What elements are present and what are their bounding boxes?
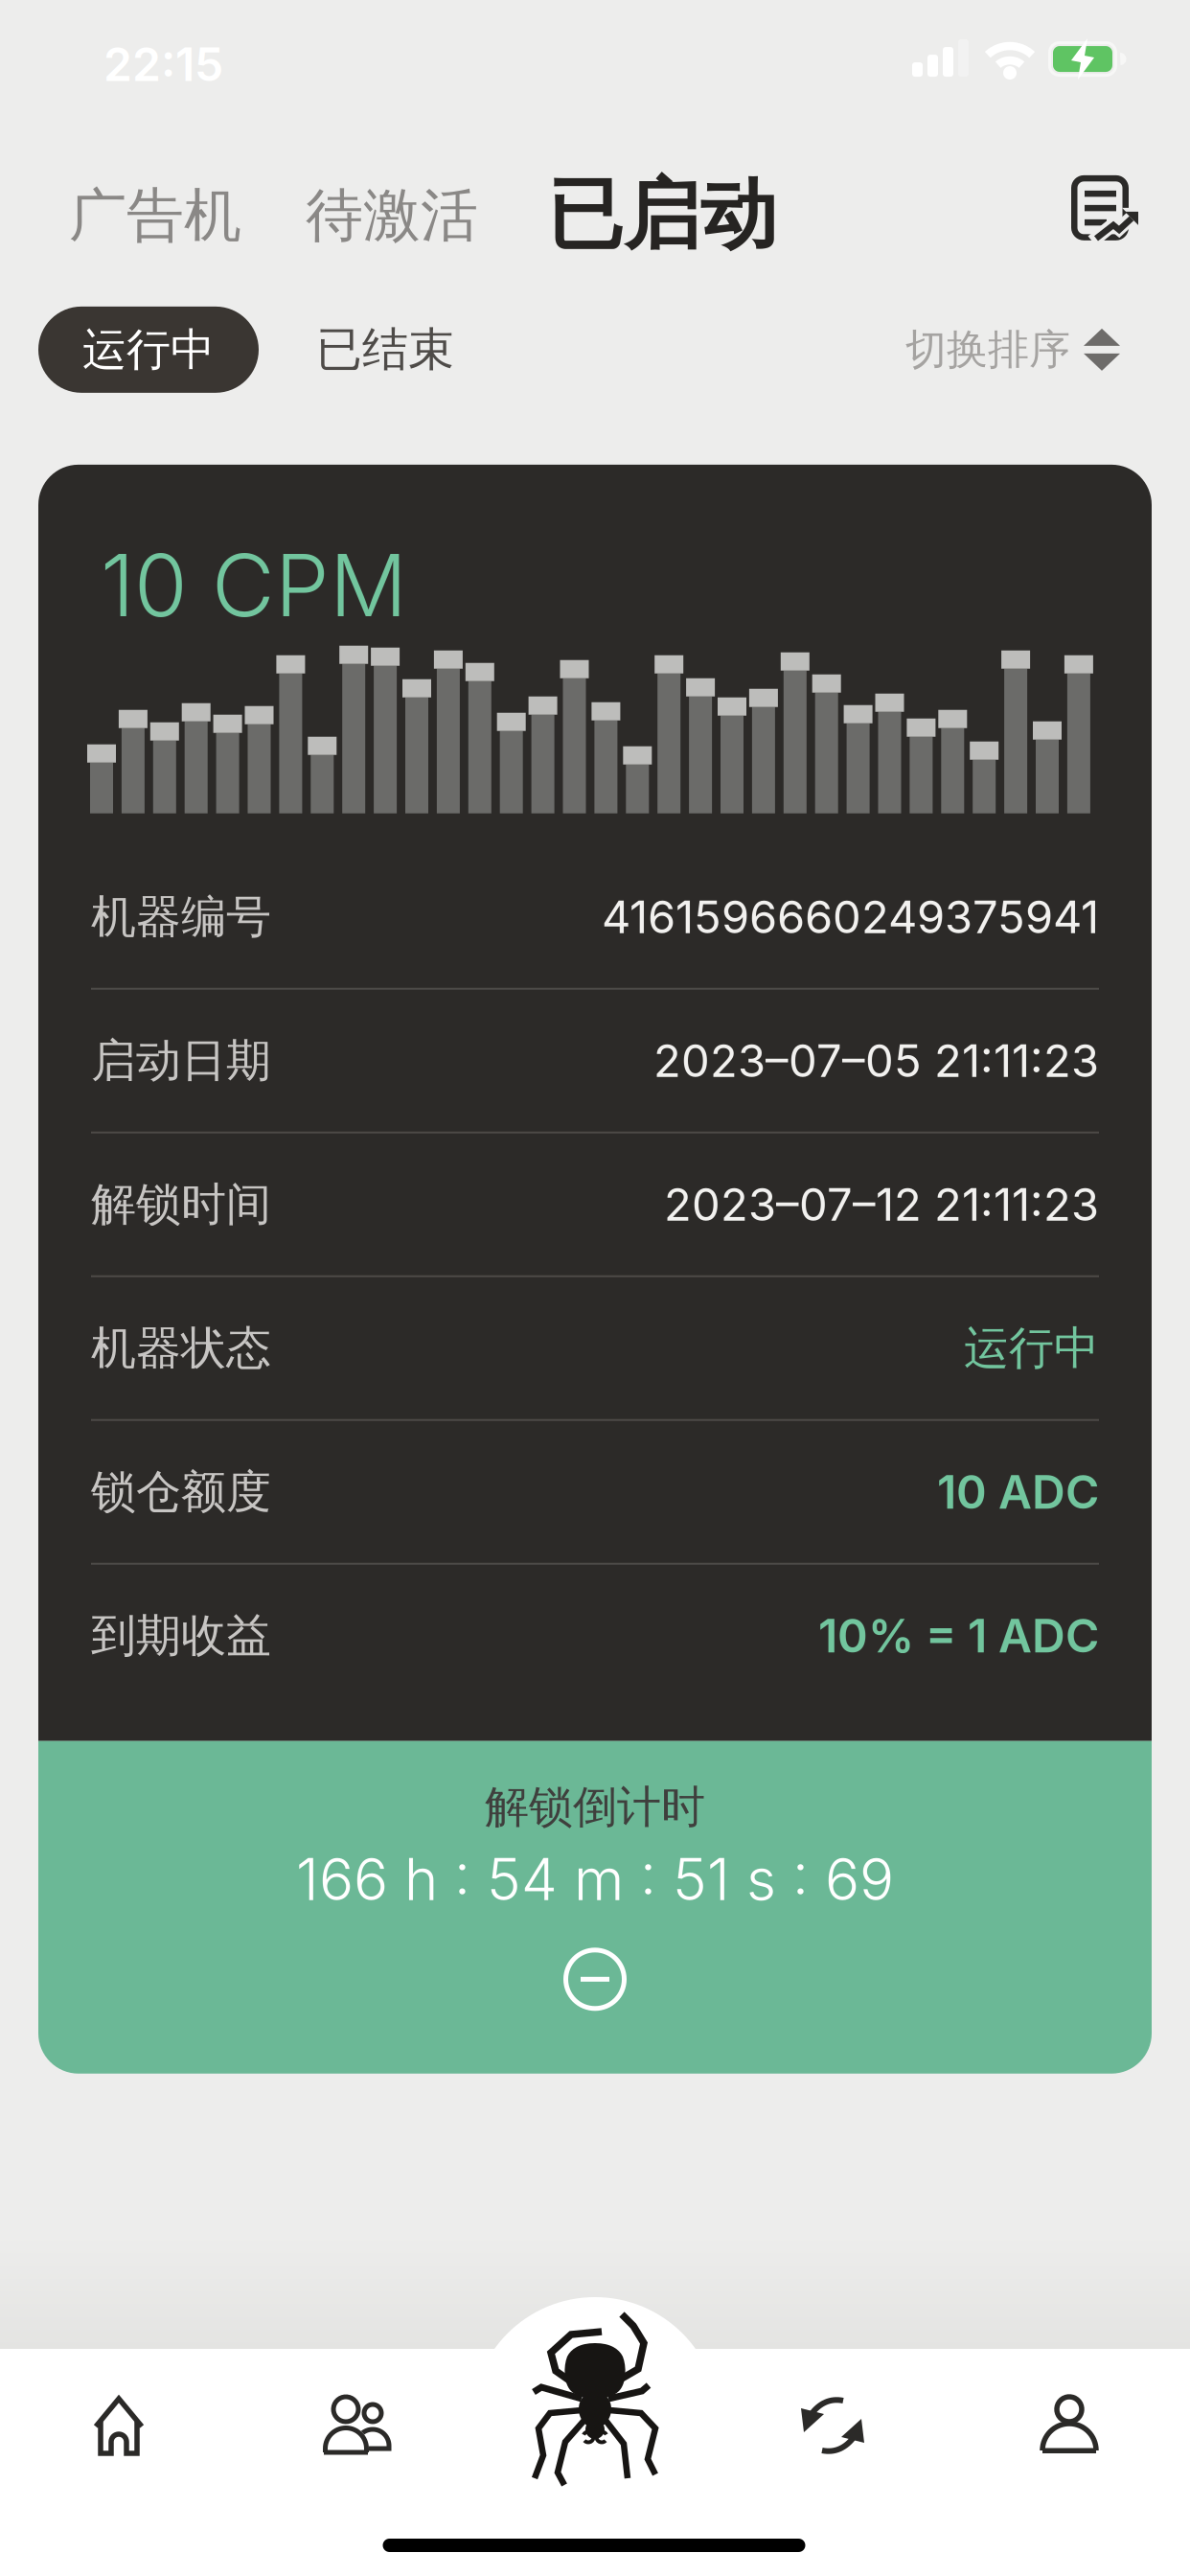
- staticText: 22:15: [103, 36, 223, 92]
- button[interactable]: 首页: [90, 2396, 148, 2455]
- staticText: 锁仓额度: [91, 1464, 271, 1520]
- staticText: 启动日期: [91, 1032, 271, 1089]
- staticText: 广告机: [69, 179, 241, 252]
- staticText: 待激活: [306, 179, 478, 252]
- button[interactable]: 运行中: [38, 307, 259, 393]
- button[interactable]: 记录: [1071, 175, 1140, 263]
- button[interactable]: 交易: [798, 2396, 867, 2455]
- staticText: 166 h : 54 m : 51 s : 69: [296, 1845, 894, 1914]
- staticText: 已启动: [547, 167, 777, 263]
- button[interactable]: 我的: [1042, 2396, 1098, 2455]
- staticText: 2023–07–12 21:11:23: [664, 1177, 1099, 1232]
- staticText: 10 ADC: [937, 1464, 1099, 1520]
- staticText: 机器编号: [91, 889, 271, 945]
- staticText: 到期收益: [91, 1607, 271, 1664]
- staticText: 10% = 1 ADC: [818, 1608, 1099, 1663]
- button[interactable]: 待激活: [241, 179, 478, 263]
- button[interactable]: 广告机: [533, 2310, 657, 2492]
- button[interactable]: 广告机: [69, 179, 241, 263]
- staticText: 2023–07–05 21:11:23: [653, 1033, 1099, 1088]
- button[interactable]: 切换排序: [905, 324, 1120, 376]
- staticText: 切换排序: [905, 324, 1070, 376]
- staticText: 运行中: [82, 322, 215, 377]
- button[interactable]: 已结束: [259, 321, 454, 379]
- staticText: 机器状态: [91, 1320, 271, 1377]
- button[interactable]: 收起: [563, 1948, 627, 2011]
- staticText: 解锁倒计时: [485, 1779, 705, 1835]
- button[interactable]: 已启动: [478, 167, 777, 263]
- staticText: 已结束: [316, 321, 454, 379]
- staticText: 运行中: [964, 1320, 1099, 1377]
- button[interactable]: 团队: [323, 2396, 390, 2455]
- staticText: 解锁时间: [91, 1176, 271, 1233]
- staticText: 4161596660249375941: [602, 890, 1099, 944]
- staticText: 10 CPM: [101, 533, 407, 637]
